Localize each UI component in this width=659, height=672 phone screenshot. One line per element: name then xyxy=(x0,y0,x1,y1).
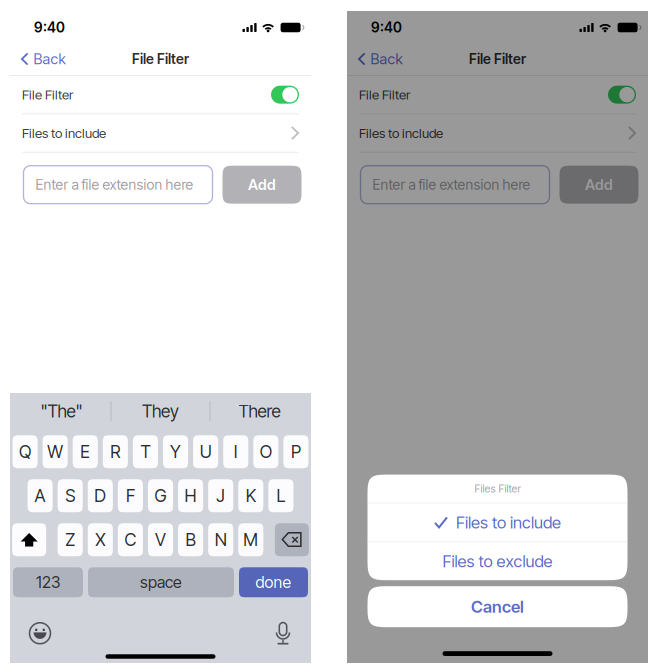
button[interactable]: W xyxy=(43,435,68,468)
staticText: T xyxy=(140,441,150,462)
staticText: K xyxy=(246,485,256,506)
staticText: Y xyxy=(170,441,181,462)
button[interactable]: G xyxy=(148,479,173,512)
button[interactable]: E xyxy=(73,435,98,468)
staticText: File Filter xyxy=(359,87,410,103)
button[interactable]: H xyxy=(178,479,203,512)
button[interactable]: 123 xyxy=(13,567,83,597)
button[interactable]: V xyxy=(148,523,173,556)
button[interactable]: Delete xyxy=(275,523,309,556)
staticText: Files to include xyxy=(22,125,106,141)
button[interactable]: M xyxy=(238,523,263,556)
staticText: Cancel xyxy=(471,597,524,617)
button[interactable]: There xyxy=(210,392,308,430)
staticText: They xyxy=(142,401,179,422)
button[interactable]: Files to exclude xyxy=(367,542,627,580)
button[interactable]: Files to include xyxy=(10,114,311,152)
button[interactable]: Files to include xyxy=(347,114,648,152)
staticText: 123 xyxy=(36,573,60,592)
staticText: File Filter xyxy=(22,87,73,103)
staticText: C xyxy=(124,529,136,550)
staticText: J xyxy=(216,485,225,506)
button[interactable]: T xyxy=(133,435,158,468)
staticText: 9:40 xyxy=(34,19,65,36)
button[interactable]: File Filter xyxy=(271,86,299,104)
staticText: done xyxy=(255,573,291,592)
staticText: Back xyxy=(33,50,65,68)
button[interactable]: R xyxy=(103,435,128,468)
button[interactable]: Files to include xyxy=(367,503,627,541)
staticText: V xyxy=(155,529,166,550)
button[interactable]: File Filter xyxy=(608,86,636,104)
staticText: Add xyxy=(248,176,276,193)
button[interactable]: P xyxy=(283,435,308,468)
button[interactable]: They xyxy=(111,392,209,430)
button[interactable]: Y xyxy=(163,435,188,468)
button[interactable]: Back xyxy=(347,44,410,74)
staticText: File Filter xyxy=(132,50,189,67)
staticText: Add xyxy=(585,176,613,193)
button[interactable]: A xyxy=(28,479,53,512)
staticText: Back xyxy=(370,50,402,68)
staticText: O xyxy=(260,441,272,462)
staticText: F xyxy=(126,485,135,506)
staticText: R xyxy=(110,441,120,462)
staticText: E xyxy=(80,441,90,462)
button[interactable]: N xyxy=(208,523,233,556)
button[interactable]: Shift xyxy=(12,523,46,556)
staticText: S xyxy=(65,485,75,506)
staticText: 9:40 xyxy=(371,19,402,36)
staticText: W xyxy=(47,441,63,462)
staticText: Q xyxy=(19,441,31,462)
staticText: U xyxy=(200,441,212,462)
button[interactable]: B xyxy=(178,523,203,556)
button[interactable]: Z xyxy=(58,523,83,556)
staticText: H xyxy=(185,485,197,506)
button[interactable]: I xyxy=(223,435,248,468)
staticText: P xyxy=(291,441,301,462)
staticText: "The" xyxy=(40,401,82,422)
button[interactable]: done xyxy=(239,567,308,597)
button[interactable]: U xyxy=(193,435,218,468)
staticText: Files to include xyxy=(456,512,561,532)
button[interactable]: space xyxy=(88,567,234,597)
button[interactable]: "The" xyxy=(12,392,110,430)
button[interactable]: Dictation xyxy=(272,621,294,645)
staticText: Enter a file extension here xyxy=(35,176,193,193)
button[interactable]: F xyxy=(118,479,143,512)
staticText: I xyxy=(234,441,238,462)
staticText: B xyxy=(186,529,196,550)
button[interactable]: Q xyxy=(12,435,38,468)
staticText: N xyxy=(215,529,227,550)
staticText: G xyxy=(154,485,166,506)
staticText: M xyxy=(243,529,258,550)
staticText: File Filter xyxy=(469,50,526,67)
staticText: Files Filter xyxy=(474,482,520,495)
button[interactable]: X xyxy=(88,523,113,556)
staticText: A xyxy=(35,485,46,506)
button[interactable]: Cancel xyxy=(367,586,627,627)
staticText: Files to include xyxy=(359,125,443,141)
staticText: L xyxy=(276,485,285,506)
staticText: Z xyxy=(65,529,75,550)
button[interactable]: O xyxy=(253,435,278,468)
button[interactable]: L xyxy=(268,479,293,512)
button[interactable]: Emoji keyboard xyxy=(27,620,53,646)
button[interactable]: Back xyxy=(10,44,73,74)
button[interactable]: Add xyxy=(222,166,301,204)
button[interactable]: J xyxy=(208,479,233,512)
button[interactable]: Add xyxy=(559,166,638,204)
staticText: D xyxy=(94,485,106,506)
staticText: There xyxy=(238,401,280,422)
button[interactable]: S xyxy=(58,479,83,512)
staticText: Enter a file extension here xyxy=(372,176,530,193)
staticText: space xyxy=(140,573,182,592)
button[interactable]: C xyxy=(118,523,143,556)
staticText: Files to exclude xyxy=(442,551,552,571)
button[interactable]: D xyxy=(88,479,113,512)
button[interactable]: K xyxy=(238,479,263,512)
staticText: X xyxy=(95,529,105,550)
